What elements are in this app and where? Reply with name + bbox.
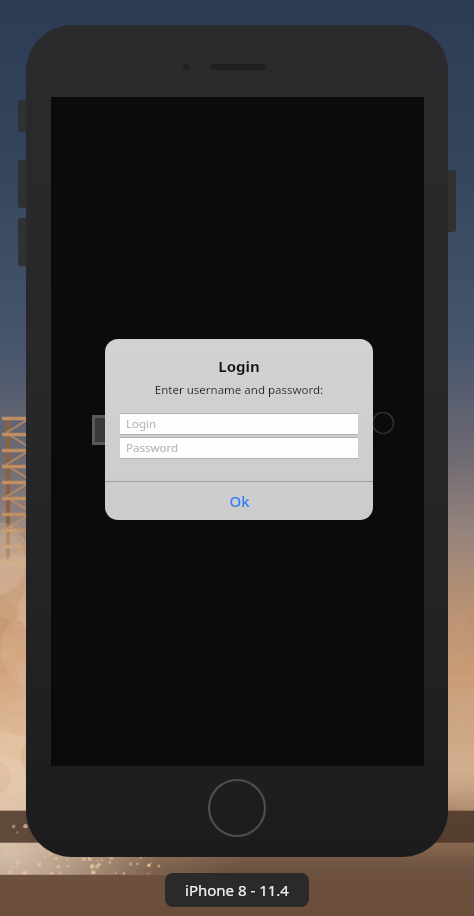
- button[interactable]: Ok: [105, 482, 373, 520]
- staticText: Login: [105, 356, 373, 376]
- button[interactable]: Login: [120, 413, 358, 435]
- staticText: Login: [126, 416, 157, 432]
- button[interactable]: Simulator device iPhone 8 - 11.4: [165, 873, 309, 907]
- staticText: iPhone 8 - 11.4: [185, 880, 289, 900]
- staticText: Ok: [229, 491, 250, 511]
- staticText: Enter username and password:: [105, 382, 373, 398]
- staticText: Password: [126, 440, 179, 456]
- button[interactable]: Password: [120, 437, 358, 459]
